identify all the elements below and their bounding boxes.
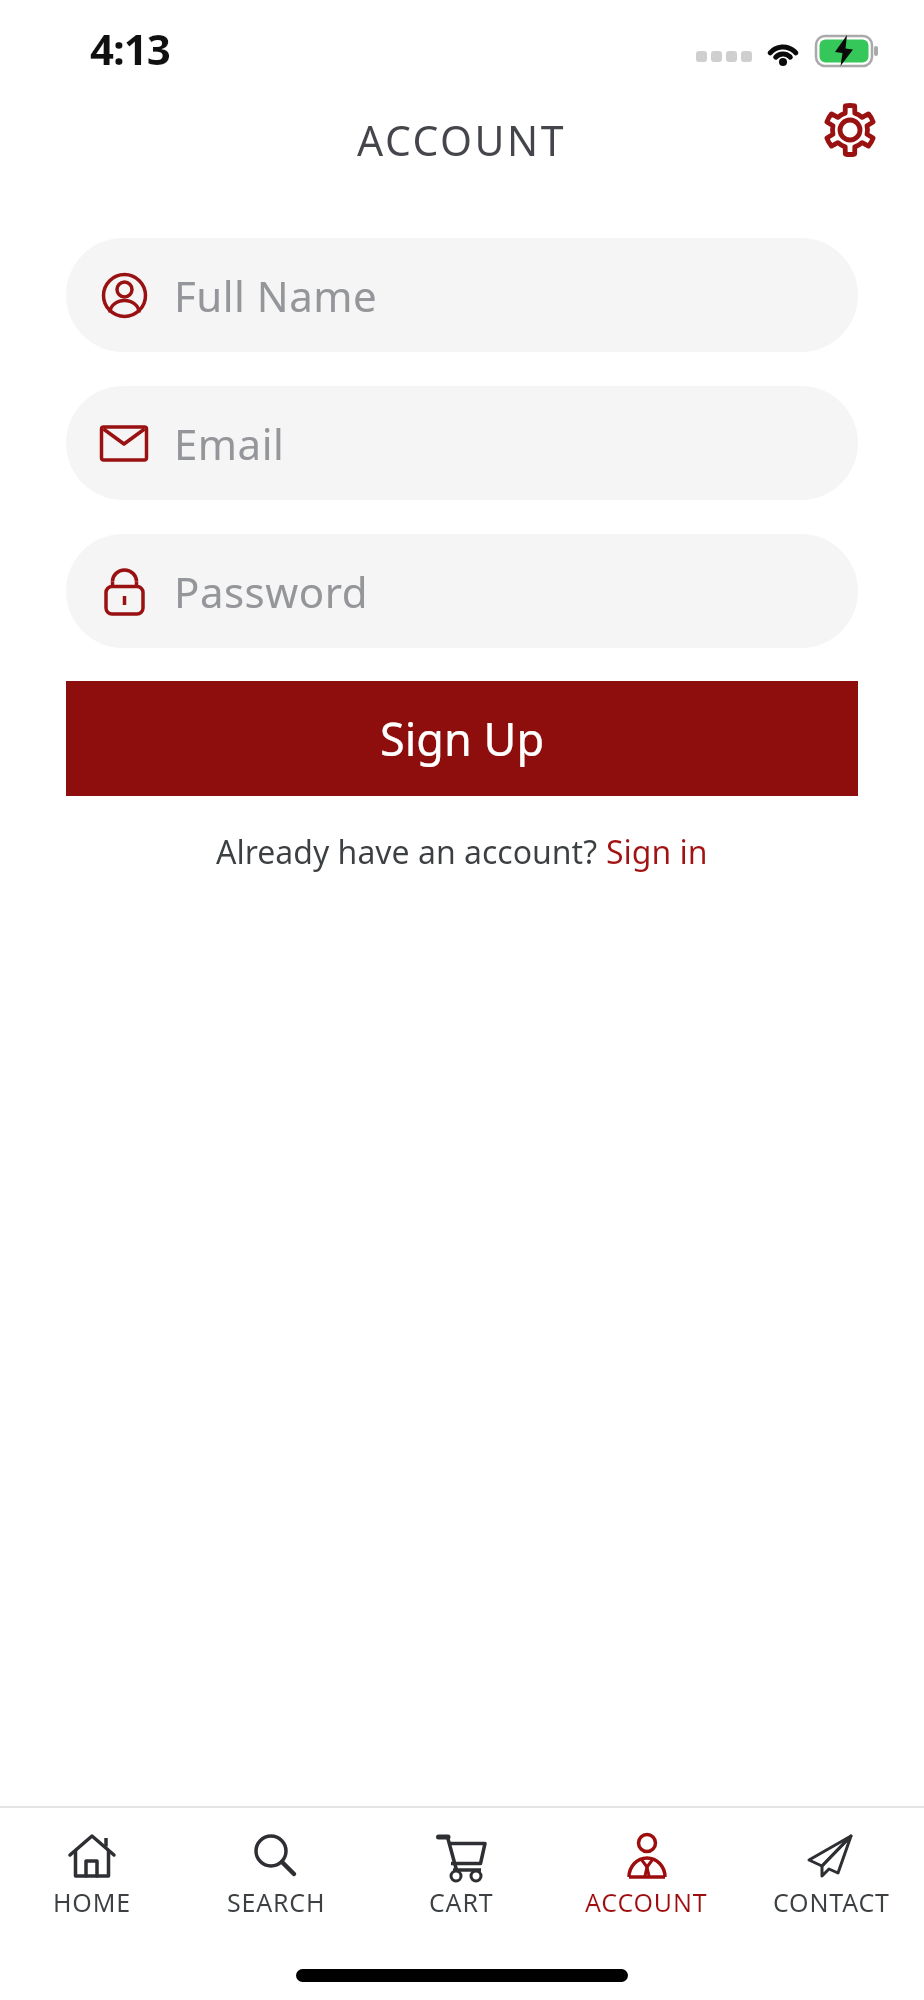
button[interactable]: Sign Up [66, 681, 858, 796]
button[interactable]: Full Name [66, 238, 858, 352]
staticText: Full Name [174, 267, 378, 324]
button[interactable]: Email [66, 386, 858, 500]
staticText: Password [174, 563, 368, 620]
staticText: SEARCH [227, 1885, 326, 1919]
button[interactable]: ACCOUNT [554, 1833, 739, 1919]
staticText: Sign Up [380, 708, 545, 769]
button[interactable]: HOME [0, 1833, 184, 1919]
button[interactable]: Sign in [606, 830, 708, 874]
button[interactable]: Password [66, 534, 858, 648]
staticText: ACCOUNT [585, 1885, 708, 1919]
staticText: 4:13 [90, 20, 170, 77]
staticText: ACCOUNT [357, 112, 567, 168]
button[interactable] [822, 102, 878, 158]
staticText: CART [429, 1885, 494, 1919]
staticText: HOME [53, 1885, 131, 1919]
staticText: Already have an account? [216, 830, 606, 874]
button[interactable]: SEARCH [184, 1833, 369, 1919]
staticText: CONTACT [773, 1885, 890, 1919]
button[interactable]: CART [369, 1833, 554, 1919]
button[interactable]: CONTACT [739, 1833, 924, 1919]
staticText: Email [174, 415, 285, 472]
